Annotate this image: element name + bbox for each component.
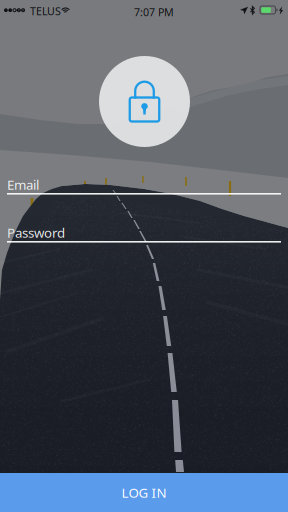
staticText: Email (7, 176, 39, 193)
staticText: TELUS (30, 4, 61, 18)
button[interactable]: LOG IN (0, 473, 288, 512)
staticText: Password (7, 224, 65, 241)
staticText: LOG IN (121, 484, 166, 501)
staticText: 7:07 PM (134, 5, 174, 19)
button[interactable]: Email (7, 176, 281, 195)
button[interactable]: Password (7, 224, 281, 243)
